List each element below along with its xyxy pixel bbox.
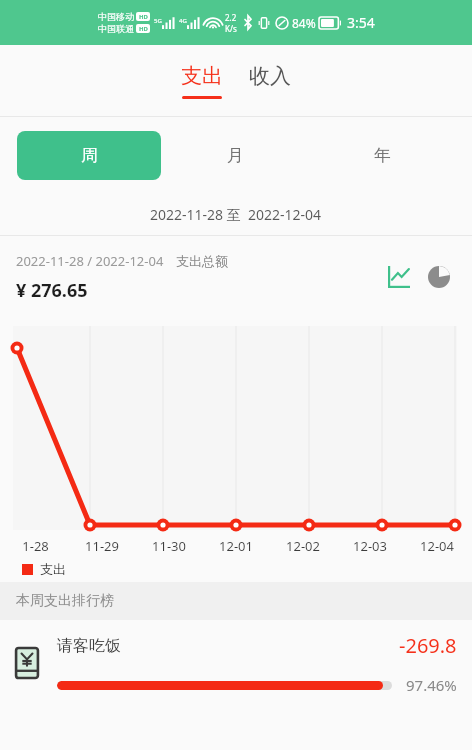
button[interactable]: 年 bbox=[310, 131, 455, 180]
button[interactable]: 周 bbox=[17, 131, 161, 180]
staticText: 11-29 bbox=[85, 537, 119, 555]
staticText: 12-01 bbox=[219, 537, 253, 555]
staticText: 中国联通 bbox=[98, 23, 134, 34]
staticText: 84% bbox=[292, 15, 316, 31]
staticText: 年 bbox=[374, 145, 391, 166]
staticText: 支出 bbox=[40, 561, 66, 577]
button[interactable]: Line chart bbox=[382, 260, 416, 294]
staticText: 4G bbox=[179, 17, 187, 25]
staticText: K/s bbox=[225, 23, 237, 34]
staticText: HD bbox=[139, 13, 148, 21]
staticText: 3:54 bbox=[347, 13, 375, 32]
staticText: HD bbox=[139, 25, 148, 33]
button[interactable]: 月 bbox=[163, 131, 308, 180]
staticText: ¥ 276.65 bbox=[16, 278, 88, 303]
staticText: -269.8 bbox=[399, 632, 457, 659]
button[interactable]: 收入 bbox=[243, 59, 297, 103]
staticText: 2022-11-28 / 2022-12-04 bbox=[16, 252, 164, 270]
button[interactable]: 请客吃饭 bbox=[0, 620, 472, 706]
staticText: 12-03 bbox=[353, 537, 387, 555]
staticText: 2022-11-28 至 2022-12-04 bbox=[150, 205, 322, 224]
staticText: 收入 bbox=[249, 63, 291, 89]
button[interactable]: Pie chart bbox=[422, 260, 456, 294]
staticText: 本周支出排行榜 bbox=[16, 592, 114, 610]
staticText: 97.46% bbox=[406, 675, 457, 695]
staticText: 月 bbox=[227, 145, 244, 166]
staticText: 中国移动 bbox=[98, 11, 134, 22]
staticText: 12-04 bbox=[420, 537, 454, 555]
staticText: 支出 bbox=[181, 63, 223, 89]
staticText: 11-30 bbox=[152, 537, 186, 555]
staticText: 12-02 bbox=[286, 537, 320, 555]
staticText: 5G bbox=[154, 17, 162, 25]
staticText: 周 bbox=[81, 145, 98, 166]
staticText: 2.2 bbox=[225, 12, 237, 23]
staticText: 支出总额 bbox=[176, 253, 228, 269]
button[interactable]: 支出 bbox=[175, 59, 229, 103]
staticText: 1-28 bbox=[22, 537, 49, 555]
staticText: 请客吃饭 bbox=[57, 636, 399, 656]
